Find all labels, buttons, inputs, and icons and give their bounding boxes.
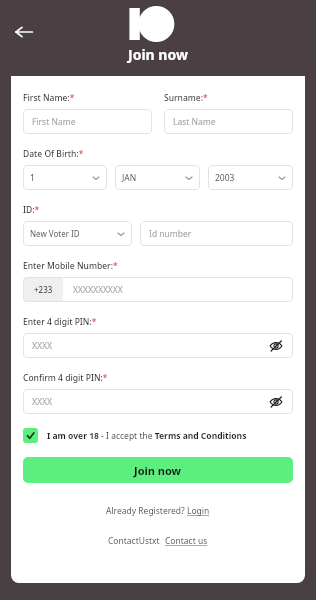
staticText: XXXX <box>32 340 52 352</box>
staticText: XXXXXXXXXX <box>73 284 123 296</box>
button[interactable]: First Name <box>23 109 152 134</box>
staticText: XXXX <box>32 396 52 408</box>
button[interactable]: Contact us <box>165 535 208 547</box>
staticText: New Voter ID <box>30 228 80 239</box>
staticText: Confirm 4 digit PIN:* <box>23 372 108 384</box>
button[interactable]: Join now <box>23 457 293 483</box>
button[interactable]: Last Name <box>164 109 293 134</box>
button[interactable]: 1 <box>23 165 107 190</box>
staticText: Surname:* <box>164 92 208 104</box>
button[interactable]: New Voter ID <box>23 221 132 246</box>
staticText: First Name:* <box>23 92 75 104</box>
staticText: Login <box>187 505 210 517</box>
staticText: 2003 <box>215 172 235 184</box>
staticText: 1 <box>30 172 35 184</box>
staticText: ContactUstxt <box>108 535 165 547</box>
button[interactable]: Id number <box>140 221 293 246</box>
staticText: Join now <box>128 45 188 64</box>
button[interactable]: XXXX <box>23 333 293 358</box>
button[interactable]: Login <box>187 505 210 517</box>
staticText: ID:* <box>23 204 40 216</box>
button[interactable]: JAN <box>115 165 200 190</box>
staticText: Join now <box>134 463 182 478</box>
button[interactable]: Show PIN <box>268 394 284 410</box>
staticText: Date Of Birth:* <box>23 148 84 160</box>
staticText: Contact us <box>165 535 208 547</box>
staticText: First Name <box>32 116 76 128</box>
button[interactable]: Back <box>8 16 40 48</box>
staticText: JAN <box>122 172 137 184</box>
staticText: Id number <box>149 228 192 240</box>
staticText: Enter Mobile Number:* <box>23 260 118 272</box>
staticText: I am over 18 - I accept the Terms and Co… <box>47 430 247 442</box>
staticText: +233 <box>34 284 53 295</box>
button[interactable]: 2003 <box>208 165 293 190</box>
staticText: Last Name <box>173 116 216 128</box>
staticText: Already Registered? <box>106 505 187 517</box>
staticText: Enter 4 digit PIN:* <box>23 316 97 328</box>
button[interactable]: Show PIN <box>268 338 284 354</box>
button[interactable]: XXXX <box>23 389 293 414</box>
button[interactable]: +233 <box>23 277 293 302</box>
button[interactable]: I am over 18 - I accept the Terms and Co… <box>23 428 293 443</box>
